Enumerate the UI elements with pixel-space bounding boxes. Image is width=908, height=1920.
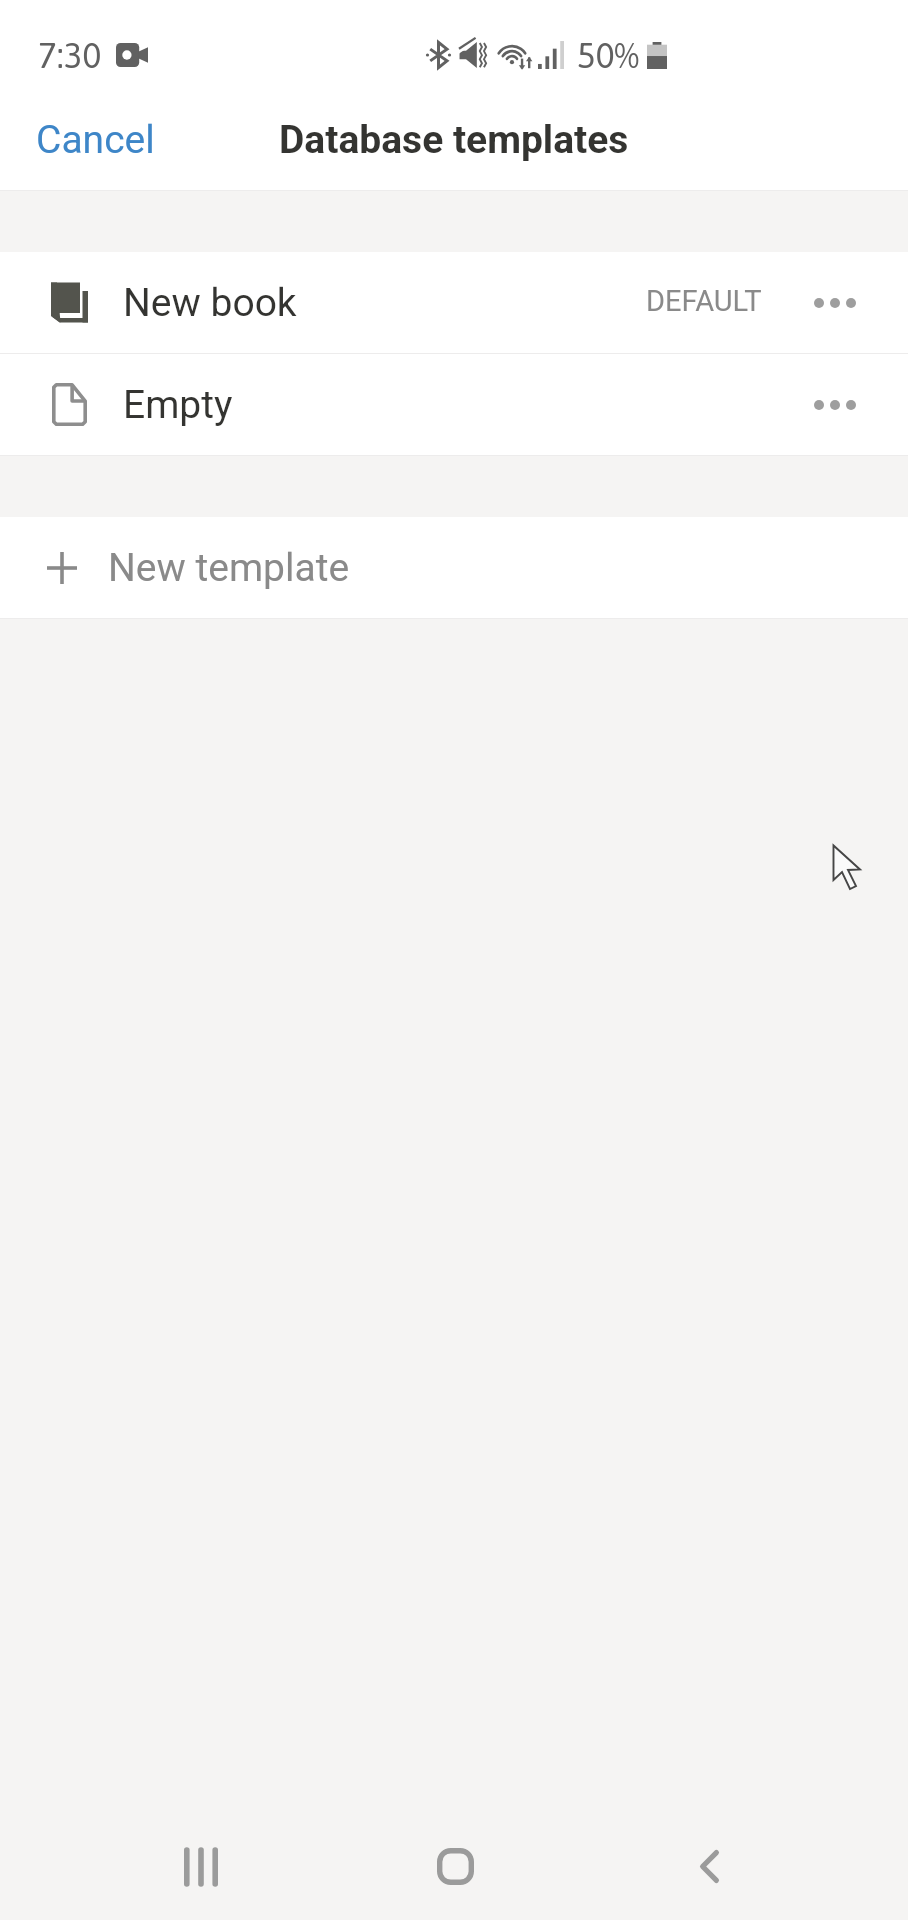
staticText: New book xyxy=(123,280,297,326)
button[interactable]: Cancel xyxy=(0,101,179,179)
button[interactable]: New book xyxy=(0,252,908,353)
staticText: 50% xyxy=(577,35,639,75)
staticText: Empty xyxy=(123,382,233,428)
button[interactable]: New template xyxy=(0,517,908,618)
button[interactable]: More options xyxy=(762,354,908,455)
staticText: Cancel xyxy=(36,117,155,163)
button[interactable]: Empty xyxy=(0,354,908,455)
button[interactable]: Home xyxy=(401,1813,509,1920)
button[interactable]: More options xyxy=(762,252,908,353)
staticText: New template xyxy=(108,545,350,591)
staticText: DEFAULT xyxy=(646,284,762,318)
button[interactable]: Back xyxy=(655,1813,763,1920)
button[interactable]: Recents xyxy=(147,1813,255,1920)
staticText: 7:30 xyxy=(38,35,102,75)
staticText: Database templates xyxy=(279,117,629,163)
